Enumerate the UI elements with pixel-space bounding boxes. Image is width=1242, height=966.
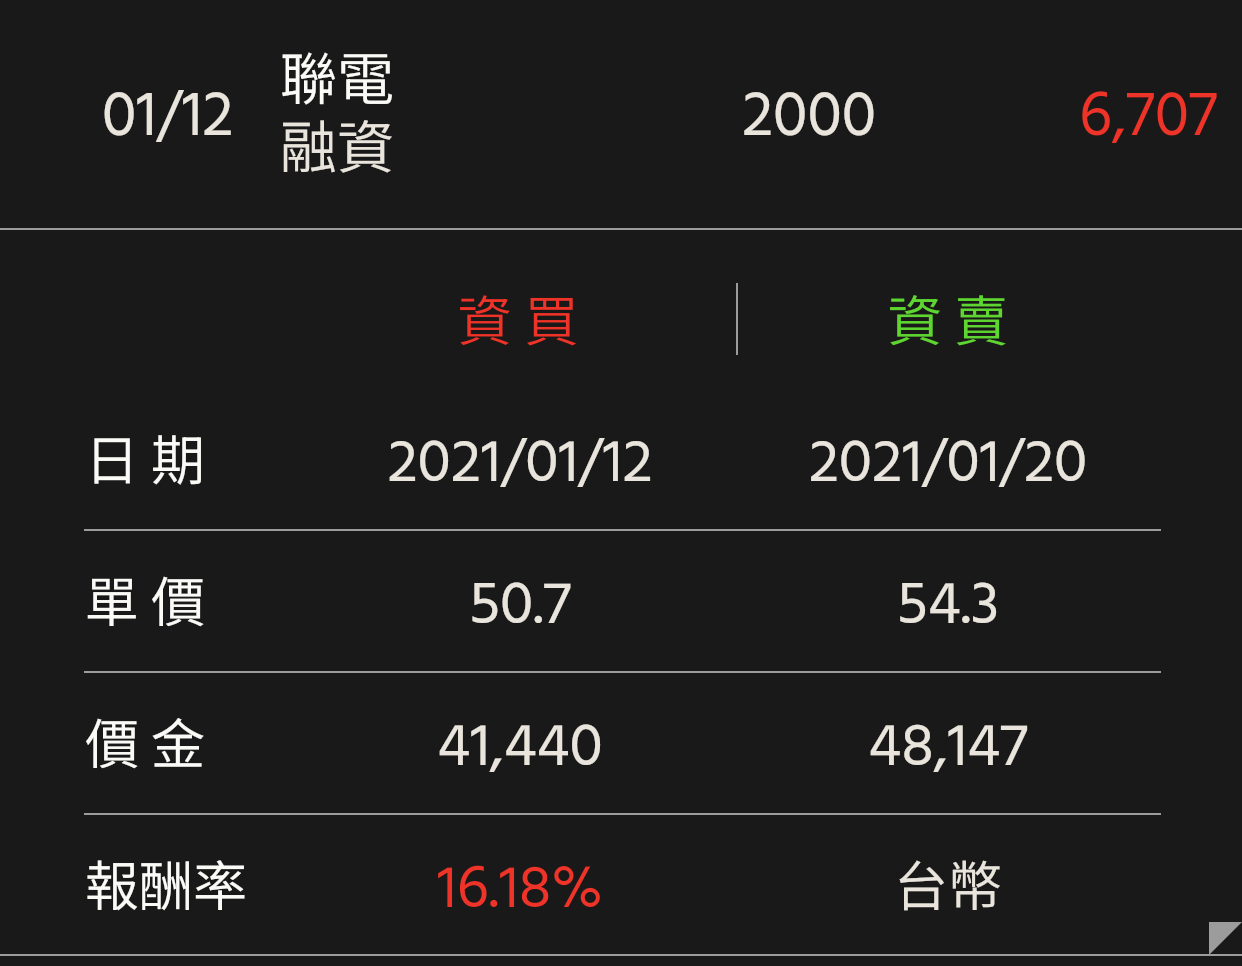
staticText: 2021/01/12 [320, 417, 720, 515]
staticText: 融資 [280, 102, 394, 185]
staticText: 2021/01/20 [748, 417, 1148, 515]
staticText: 6,707 [1079, 69, 1218, 170]
button[interactable]: 資 買 [318, 247, 718, 387]
staticText: 資 賣 [748, 278, 1148, 357]
staticText: 日 期 [85, 417, 206, 495]
staticText: 50.7 [320, 559, 720, 657]
button[interactable]: 價 金 [0, 672, 1242, 814]
staticText: 2000 [742, 69, 876, 170]
button[interactable]: 單 價 [0, 530, 1242, 672]
staticText: 報酬率 [85, 843, 247, 921]
button[interactable]: 資 賣 [748, 247, 1148, 387]
staticText: 01/12 [102, 69, 234, 170]
other: Resize [1209, 922, 1242, 955]
staticText: 41,440 [320, 701, 720, 799]
button[interactable]: 日 期 [0, 388, 1242, 530]
staticText: 48,147 [748, 701, 1148, 799]
staticText: 16.18% [320, 843, 720, 941]
staticText: 資 買 [318, 278, 718, 357]
button[interactable]: 報酬率 [0, 814, 1242, 956]
staticText: 單 價 [85, 559, 206, 637]
button[interactable]: 01/12 [0, 0, 1242, 228]
staticText: 價 金 [85, 701, 206, 779]
staticText: 台幣 [748, 843, 1148, 921]
staticText: 聯電 [280, 34, 394, 117]
staticText: 54.3 [748, 559, 1148, 657]
